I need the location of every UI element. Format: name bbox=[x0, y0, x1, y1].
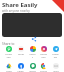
staticText: Facebook bbox=[17, 70, 24, 72]
staticText: Instagram bbox=[40, 53, 47, 59]
staticText: Share Easily bbox=[2, 1, 38, 9]
staticText: Messages bbox=[29, 70, 36, 72]
button[interactable]: Photos bbox=[29, 46, 36, 59]
staticText: Telegram bbox=[52, 53, 59, 59]
staticText: Share to bbox=[2, 42, 15, 46]
button[interactable]: WhatsApp bbox=[5, 46, 12, 59]
button[interactable]: Messages bbox=[29, 63, 36, 72]
staticText: with anyone nearby bbox=[2, 9, 30, 13]
staticText: Photos bbox=[29, 53, 36, 59]
button[interactable]: Drive bbox=[5, 63, 12, 72]
button[interactable]: More bbox=[52, 63, 59, 72]
button[interactable]: Chrome bbox=[40, 63, 47, 72]
staticText: Drive bbox=[6, 70, 12, 72]
other: New bbox=[52, 0, 64, 12]
button[interactable]: Facebook bbox=[17, 63, 24, 72]
button[interactable] bbox=[2, 13, 62, 37]
staticText: Gmail bbox=[18, 53, 24, 56]
button[interactable]: Telegram bbox=[52, 46, 59, 59]
staticText: Chrome bbox=[40, 70, 47, 72]
staticText: More bbox=[53, 70, 59, 72]
button[interactable]: Gmail bbox=[17, 46, 24, 56]
button[interactable]: Instagram bbox=[40, 46, 47, 59]
button[interactable]: Share bbox=[31, 36, 37, 42]
staticText: WhatsApp bbox=[5, 53, 12, 59]
